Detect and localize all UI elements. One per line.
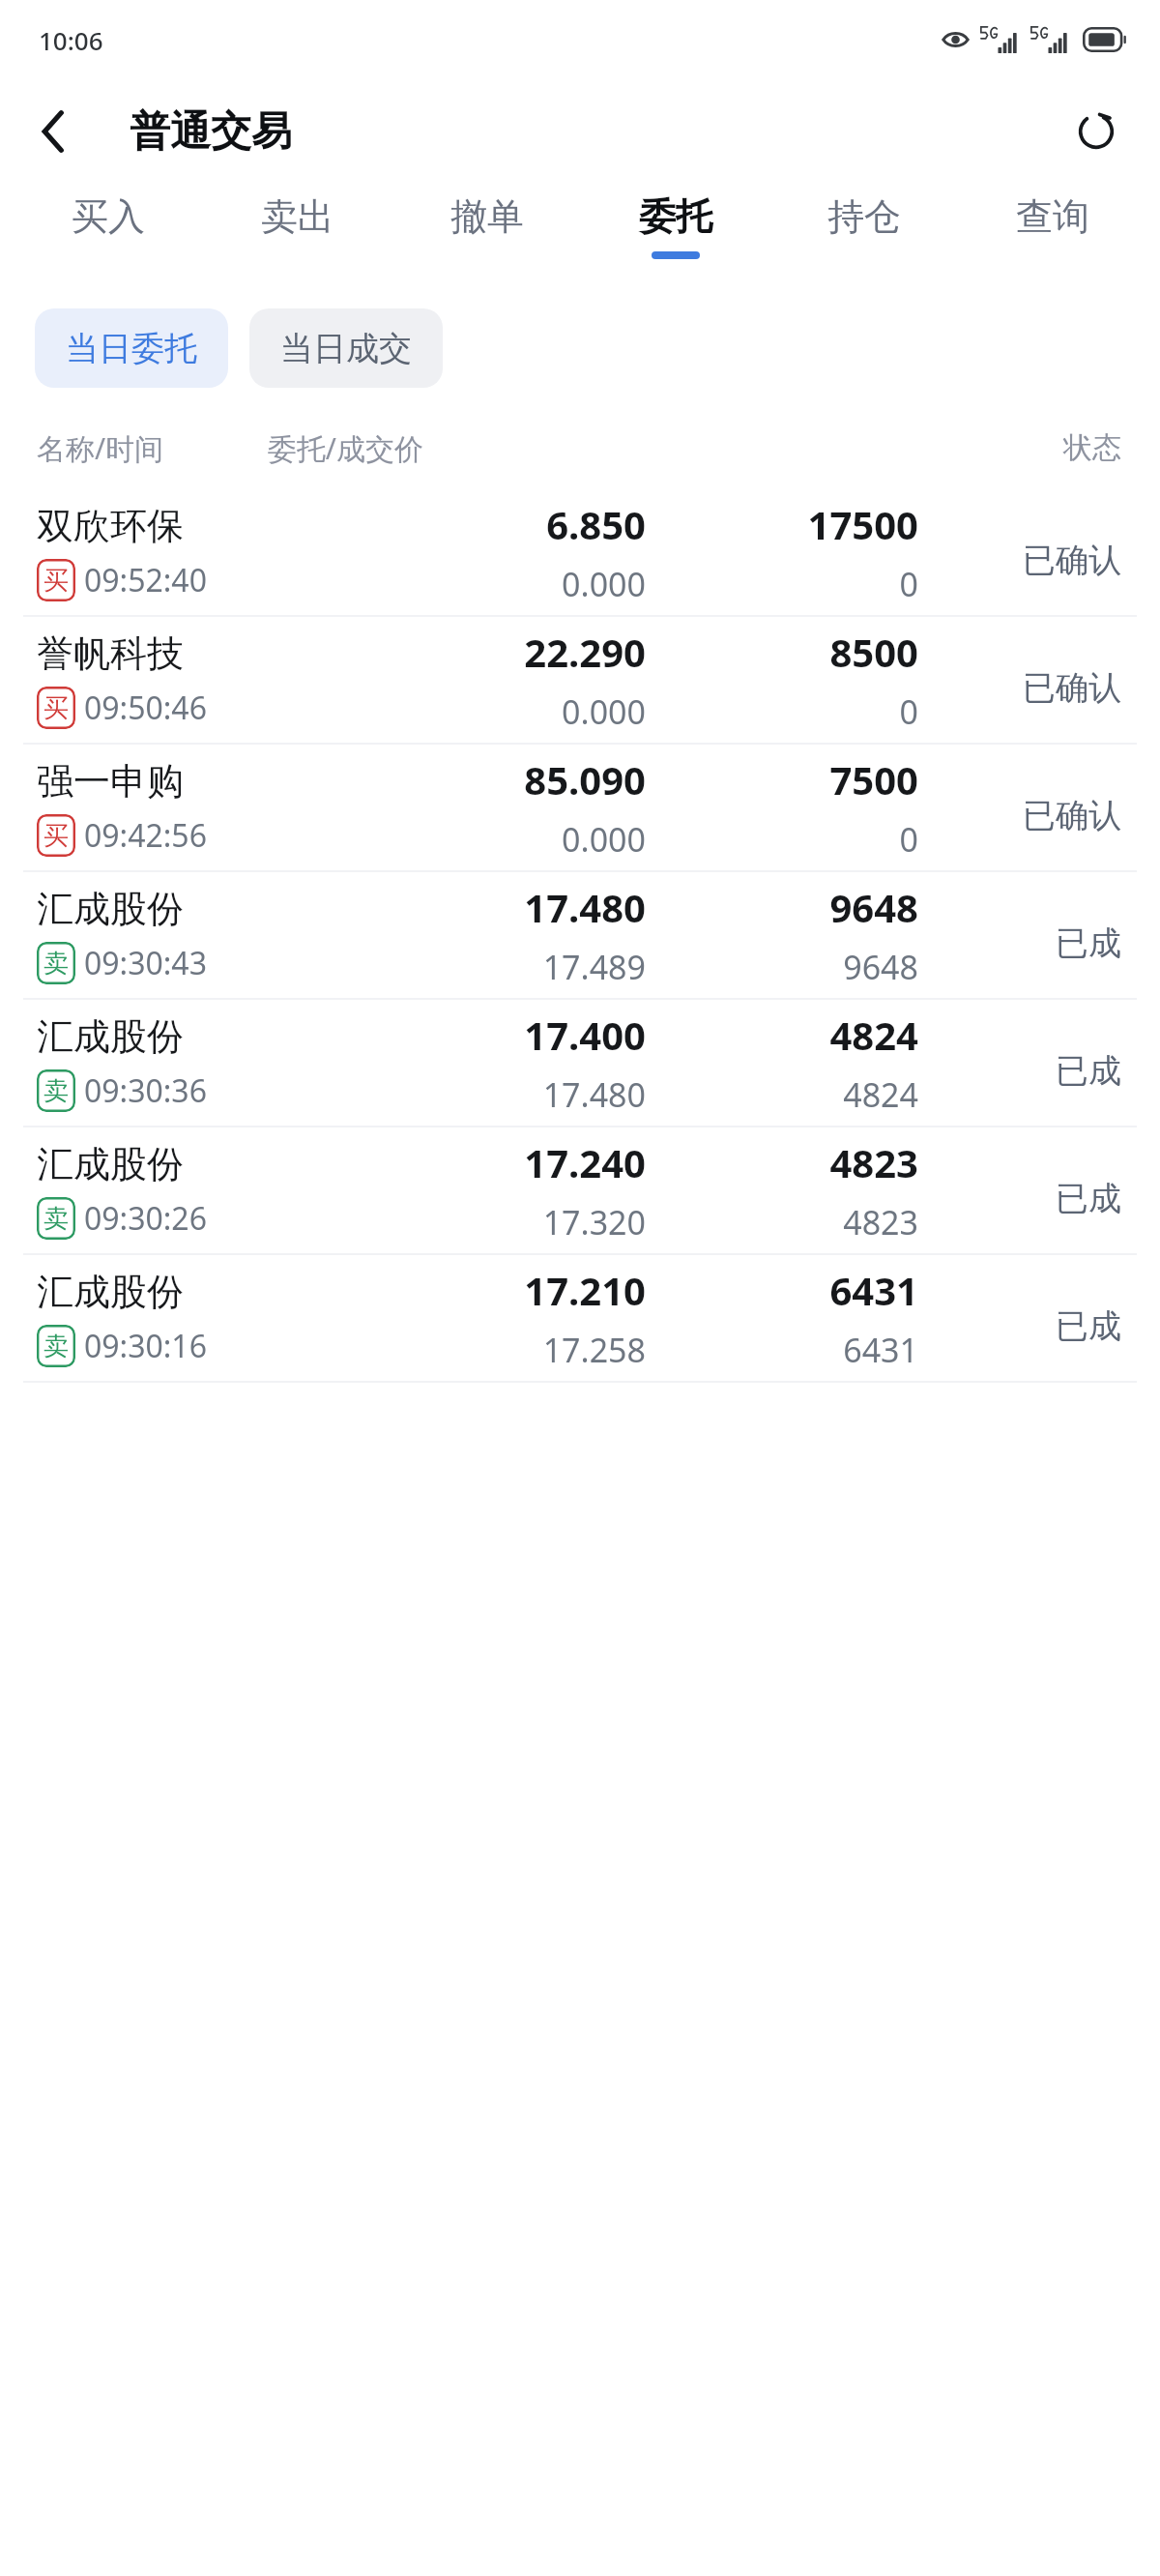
staticText: 85.090 bbox=[524, 753, 646, 805]
staticText: 17.240 bbox=[524, 1136, 646, 1188]
staticText: 查询 bbox=[1016, 193, 1089, 240]
button[interactable]: 强一申购 bbox=[0, 745, 1160, 870]
staticText: 普通交易 bbox=[130, 106, 292, 158]
staticText: 卖 bbox=[43, 1075, 69, 1107]
staticText: 9648 bbox=[843, 945, 918, 989]
staticText: 汇成股份 bbox=[37, 1269, 184, 1315]
button[interactable]: 誉帆科技 bbox=[0, 617, 1160, 743]
staticText: 已成 bbox=[1056, 1305, 1121, 1347]
staticText: 17.480 bbox=[542, 1072, 646, 1117]
button[interactable]: 汇成股份 bbox=[0, 1000, 1160, 1126]
staticText: 汇成股份 bbox=[37, 886, 184, 932]
staticText: 7500 bbox=[829, 753, 918, 805]
staticText: 撤单 bbox=[450, 193, 524, 240]
staticText: 汇成股份 bbox=[37, 1013, 184, 1060]
staticText: 状态 bbox=[1063, 429, 1121, 466]
staticText: 卖出 bbox=[261, 193, 334, 240]
button[interactable]: 汇成股份 bbox=[0, 1255, 1160, 1381]
staticText: 09:30:43 bbox=[84, 942, 207, 984]
staticText: 0.000 bbox=[562, 689, 646, 734]
button[interactable]: 撤单 bbox=[392, 184, 581, 290]
staticText: 0 bbox=[899, 562, 918, 606]
staticText: 6431 bbox=[843, 1328, 918, 1372]
staticText: 4823 bbox=[829, 1136, 918, 1188]
staticText: 4824 bbox=[829, 1009, 918, 1061]
button[interactable]: 当日委托 bbox=[35, 308, 228, 388]
staticText: 买入 bbox=[72, 193, 145, 240]
staticText: 卖 bbox=[43, 1203, 69, 1235]
staticText: 买 bbox=[43, 565, 69, 597]
staticText: 汇成股份 bbox=[37, 1141, 184, 1187]
button[interactable]: 委托 bbox=[581, 184, 769, 290]
button[interactable]: 汇成股份 bbox=[0, 872, 1160, 998]
button[interactable]: 持仓 bbox=[769, 184, 958, 290]
button[interactable]: Refresh bbox=[1059, 95, 1133, 168]
staticText: 卖 bbox=[43, 948, 69, 980]
button[interactable]: 双欣环保 bbox=[0, 489, 1160, 615]
staticText: 委托 bbox=[639, 193, 712, 240]
staticText: 强一申购 bbox=[37, 758, 184, 805]
staticText: 6.850 bbox=[546, 498, 646, 550]
staticText: 8500 bbox=[829, 626, 918, 678]
staticText: 09:30:26 bbox=[84, 1197, 207, 1240]
staticText: 17.210 bbox=[524, 1264, 646, 1316]
staticText: 4824 bbox=[843, 1072, 918, 1117]
staticText: 22.290 bbox=[524, 626, 646, 678]
staticText: 持仓 bbox=[827, 193, 901, 240]
button[interactable]: 查询 bbox=[958, 184, 1146, 290]
staticText: 17.489 bbox=[542, 945, 646, 989]
staticText: 09:30:36 bbox=[84, 1069, 207, 1112]
staticText: 誉帆科技 bbox=[37, 630, 184, 677]
button[interactable]: 汇成股份 bbox=[0, 1127, 1160, 1253]
button[interactable]: 卖出 bbox=[203, 184, 392, 290]
staticText: 6431 bbox=[829, 1264, 918, 1316]
staticText: 09:50:46 bbox=[84, 687, 207, 729]
staticText: 17.400 bbox=[524, 1009, 646, 1061]
staticText: 17.320 bbox=[542, 1200, 646, 1244]
staticText: 09:42:56 bbox=[84, 814, 207, 857]
staticText: 09:30:16 bbox=[84, 1325, 207, 1367]
staticText: 卖 bbox=[43, 1331, 69, 1362]
staticText: 买 bbox=[43, 820, 69, 852]
staticText: 当日委托 bbox=[66, 328, 197, 369]
staticText: 17.480 bbox=[524, 881, 646, 933]
staticText: 0.000 bbox=[562, 817, 646, 862]
staticText: 09:52:40 bbox=[84, 559, 207, 601]
button[interactable]: 当日成交 bbox=[249, 308, 443, 388]
button[interactable]: 买入 bbox=[14, 184, 203, 290]
staticText: 17500 bbox=[807, 498, 918, 550]
staticText: 买 bbox=[43, 692, 69, 724]
staticText: 17.258 bbox=[542, 1328, 646, 1372]
staticText: 当日成交 bbox=[280, 328, 412, 369]
staticText: 已确认 bbox=[1023, 540, 1121, 581]
staticText: 0 bbox=[899, 817, 918, 862]
staticText: 已成 bbox=[1056, 1178, 1121, 1219]
staticText: 4823 bbox=[843, 1200, 918, 1244]
staticText: 委托/成交价 bbox=[222, 428, 423, 468]
staticText: 0 bbox=[899, 689, 918, 734]
staticText: 10:06 bbox=[39, 23, 103, 57]
button[interactable]: Back bbox=[17, 96, 89, 167]
staticText: 已确认 bbox=[1023, 795, 1121, 836]
staticText: 已成 bbox=[1056, 1050, 1121, 1092]
staticText: 双欣环保 bbox=[37, 503, 184, 549]
staticText: 名称/时间 bbox=[37, 428, 164, 468]
staticText: 已确认 bbox=[1023, 667, 1121, 709]
staticText: 9648 bbox=[829, 881, 918, 933]
staticText: 已成 bbox=[1056, 922, 1121, 964]
staticText: 0.000 bbox=[562, 562, 646, 606]
